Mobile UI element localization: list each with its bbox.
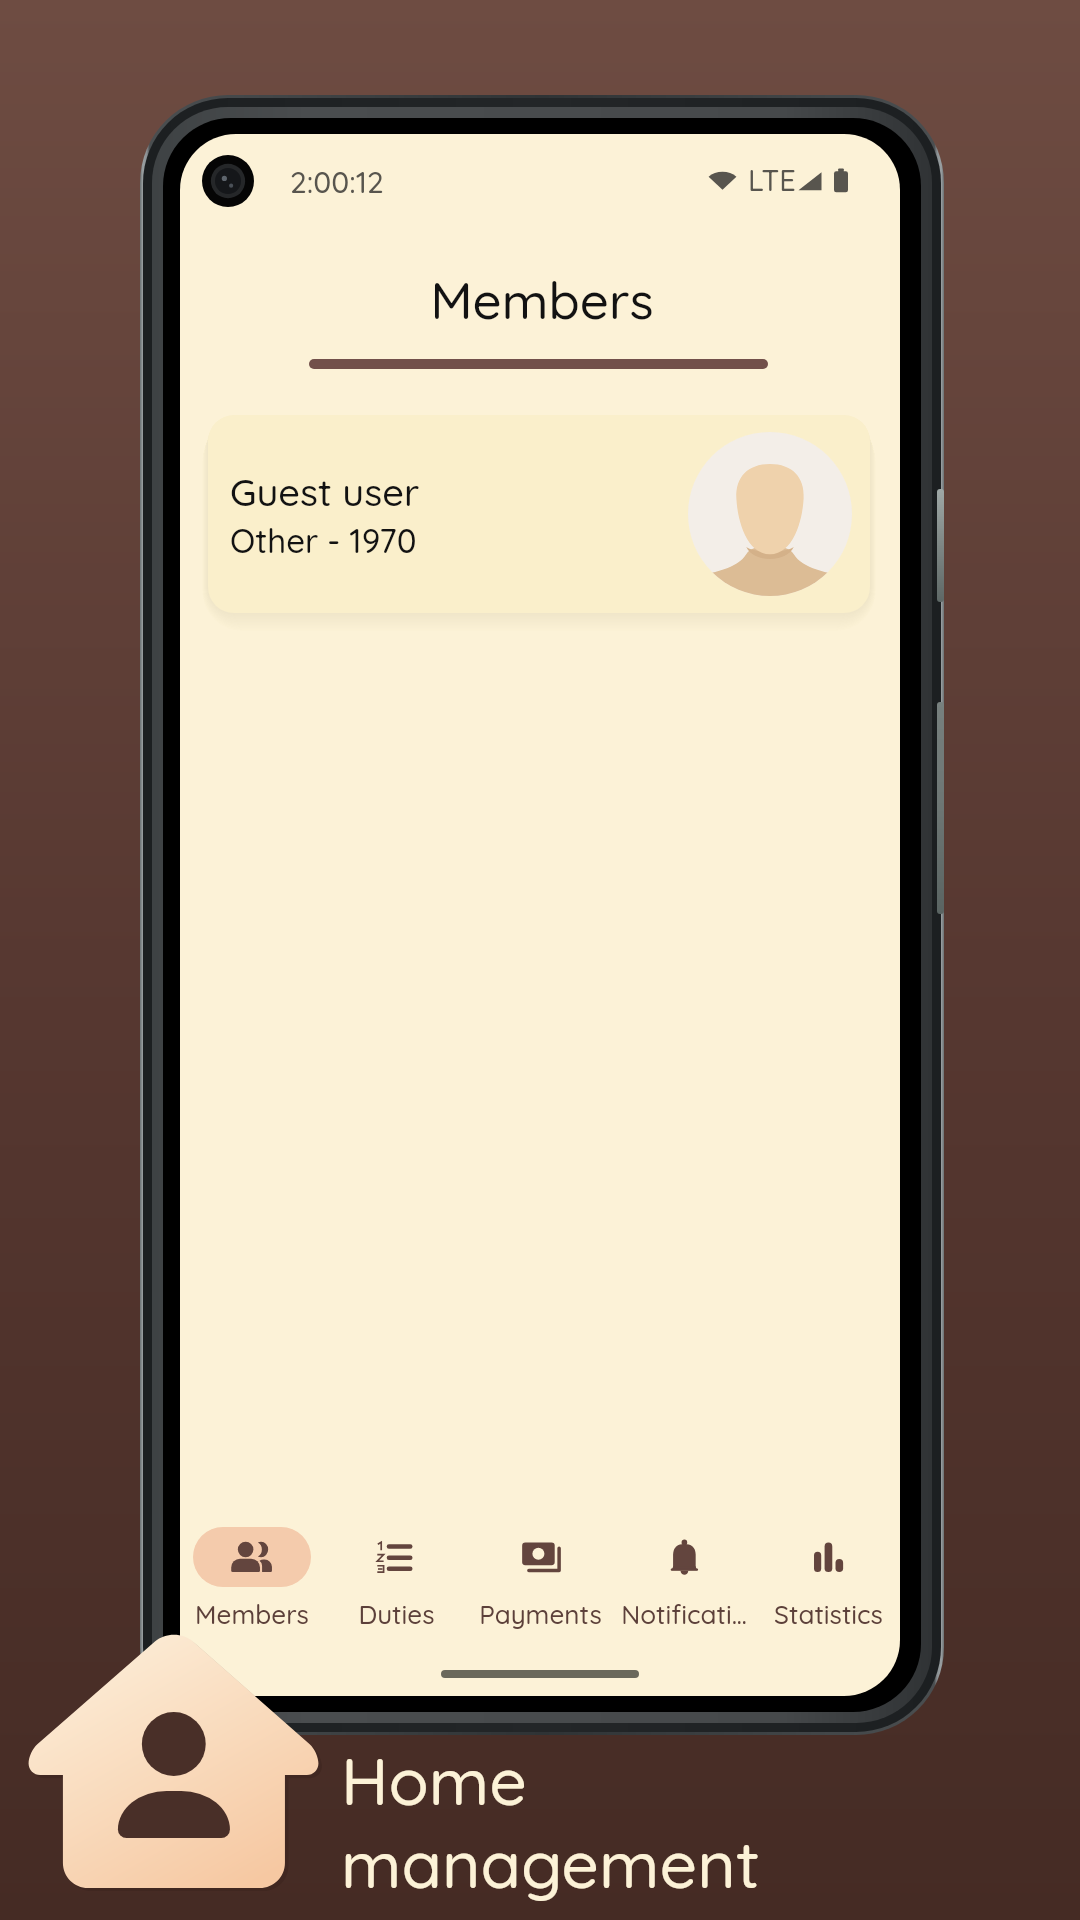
- staticText: Payments: [479, 1598, 602, 1631]
- button[interactable]: Notifications tab: [612, 1527, 756, 1631]
- staticText: management: [341, 1822, 760, 1905]
- staticText: 2:00:12: [290, 163, 384, 201]
- button[interactable]: Statistics tab: [756, 1527, 900, 1631]
- staticText: Statistics: [774, 1598, 883, 1631]
- staticText: Notificati…: [621, 1598, 747, 1631]
- staticText: Members: [195, 1598, 309, 1631]
- staticText: Members: [182, 268, 900, 332]
- staticText: LTE: [748, 162, 796, 198]
- staticText: Other - 1970: [230, 520, 417, 561]
- button[interactable]: Guest user: [208, 415, 870, 613]
- staticText: Guest user: [230, 468, 420, 516]
- staticText: Duties: [358, 1598, 435, 1631]
- button[interactable]: Members tab: [180, 1527, 324, 1631]
- button[interactable]: Payments tab: [468, 1527, 612, 1631]
- staticText: Home: [341, 1739, 528, 1822]
- button[interactable]: Duties tab: [324, 1527, 468, 1631]
